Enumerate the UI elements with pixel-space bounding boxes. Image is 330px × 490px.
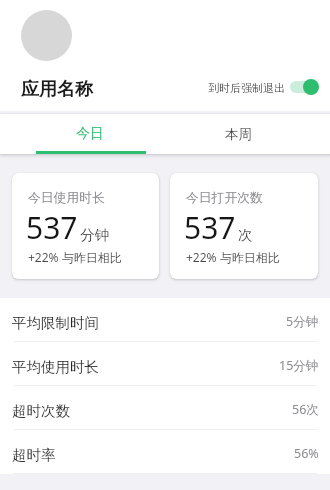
staticText: 15分钟 bbox=[279, 357, 319, 374]
staticText: 今日使用时长 bbox=[28, 190, 105, 206]
button[interactable]: 到时后强制退出 bbox=[290, 79, 319, 95]
button[interactable]: 本周 bbox=[163, 114, 313, 154]
staticText: 56% bbox=[294, 445, 319, 462]
staticText: +22% 与昨日相比 bbox=[186, 249, 280, 265]
button[interactable]: 平均限制时间 bbox=[0, 298, 330, 341]
staticText: 分钟 bbox=[80, 226, 109, 244]
button[interactable]: 今日打开次数 bbox=[170, 173, 318, 279]
staticText: 56次 bbox=[292, 401, 319, 418]
staticText: 平均限制时间 bbox=[12, 314, 99, 332]
button[interactable]: 今日使用时长 bbox=[12, 173, 159, 279]
staticText: 5分钟 bbox=[286, 313, 319, 330]
staticText: 超时次数 bbox=[12, 402, 70, 420]
staticText: 平均使用时长 bbox=[12, 358, 99, 376]
button[interactable]: 平均使用时长 bbox=[0, 342, 330, 385]
staticText: 今日 bbox=[76, 125, 104, 143]
staticText: 应用名称 bbox=[21, 78, 93, 101]
staticText: 次 bbox=[238, 226, 253, 244]
staticText: 537 bbox=[184, 207, 236, 248]
staticText: 本周 bbox=[225, 126, 252, 143]
staticText: 537 bbox=[26, 207, 78, 248]
staticText: +22% 与昨日相比 bbox=[28, 249, 122, 265]
staticText: 到时后强制退出 bbox=[208, 81, 285, 95]
button[interactable]: 超时率 bbox=[0, 430, 330, 473]
staticText: 超时率 bbox=[12, 446, 56, 464]
staticText: 今日打开次数 bbox=[186, 190, 263, 206]
button[interactable]: 今日 bbox=[14, 114, 163, 154]
button[interactable]: 超时次数 bbox=[0, 386, 330, 429]
